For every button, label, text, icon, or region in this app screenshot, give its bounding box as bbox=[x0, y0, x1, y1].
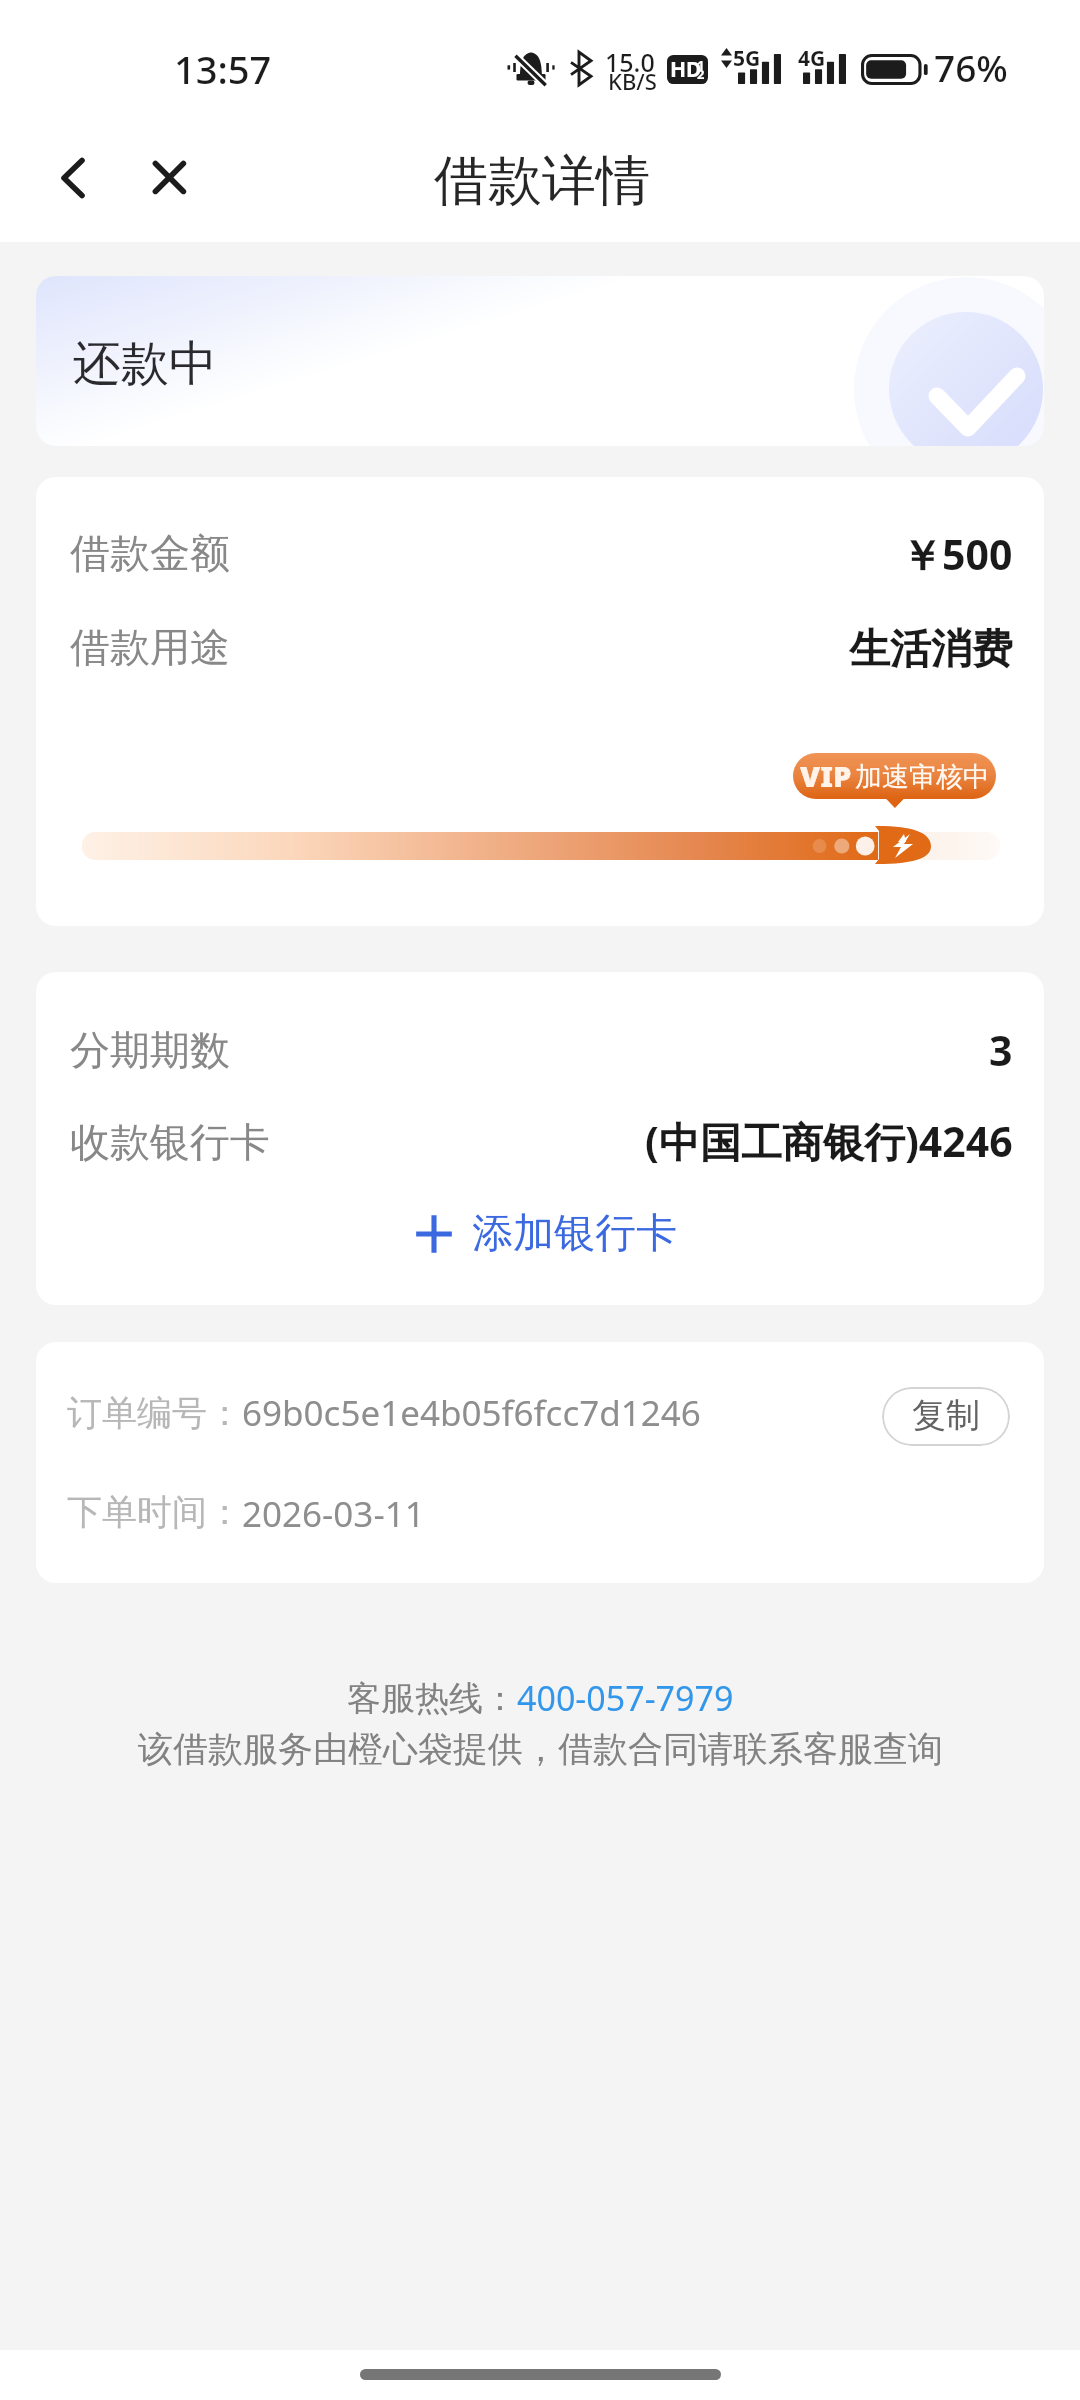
staticText: 添加银行卡 bbox=[472, 1208, 677, 1260]
staticText: 客服热线： bbox=[347, 1677, 517, 1720]
staticText: 5G bbox=[733, 44, 761, 73]
staticText: 借款金额 bbox=[70, 528, 230, 578]
staticText: ￥500 bbox=[901, 526, 1013, 582]
staticText: 15.0 bbox=[605, 45, 655, 79]
staticText: VIP bbox=[800, 756, 852, 795]
staticText: KB/S bbox=[608, 66, 657, 96]
staticText: 订单编号： bbox=[67, 1391, 242, 1435]
staticText: 加速审核中 bbox=[855, 760, 990, 794]
button[interactable]: 复制 bbox=[882, 1387, 1010, 1446]
button[interactable]: Back bbox=[33, 137, 113, 217]
button[interactable]: 添加银行卡 bbox=[412, 1208, 677, 1260]
staticText: 69b0c5e1e4b05f6fcc7d1246 bbox=[242, 1389, 701, 1437]
staticText: 收款银行卡 bbox=[70, 1117, 270, 1167]
staticText: (中国工商银行)4246 bbox=[645, 1113, 1013, 1169]
staticText: 生活消费 bbox=[849, 624, 1013, 676]
staticText: 76% bbox=[934, 42, 1008, 92]
staticText: 该借款服务由橙心袋提供，借款合同请联系客服查询 bbox=[138, 1727, 943, 1771]
staticText: 复制 bbox=[912, 1394, 980, 1437]
staticText: 400-057-7979 bbox=[517, 1675, 734, 1721]
staticText: 借款详情 bbox=[434, 147, 650, 215]
staticText: 3 bbox=[989, 1022, 1013, 1078]
staticText: 下单时间： bbox=[67, 1490, 242, 1534]
staticText: 分期期数 bbox=[70, 1025, 230, 1075]
staticText: HD bbox=[670, 55, 702, 84]
staticText: 2026-03-11 bbox=[242, 1490, 425, 1538]
staticText: 13:57 bbox=[174, 43, 272, 95]
staticText: 2 bbox=[697, 65, 705, 83]
staticText: 借款用途 bbox=[70, 622, 230, 672]
button[interactable]: Close bbox=[129, 137, 209, 217]
staticText: 还款中 bbox=[73, 334, 217, 394]
staticText: 4G bbox=[798, 44, 826, 73]
staticText: 1 bbox=[697, 56, 705, 74]
